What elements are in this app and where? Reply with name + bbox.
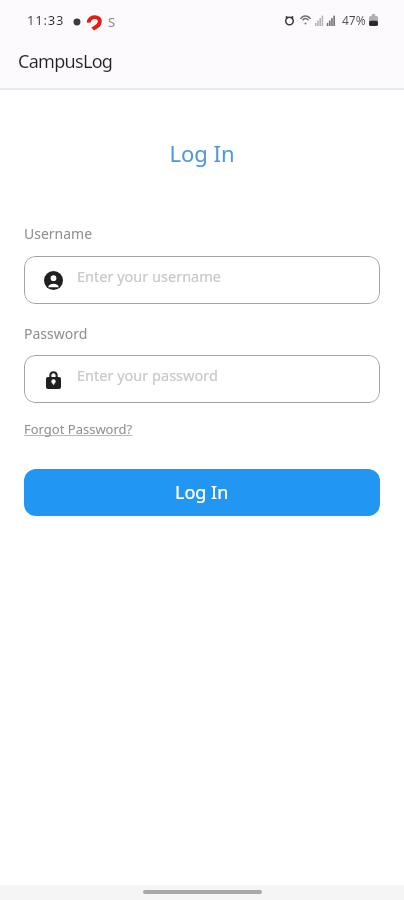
staticText: Enter your password: [77, 365, 218, 385]
staticText: Enter your username: [77, 266, 221, 286]
other: Username: [44, 271, 63, 290]
button[interactable]: Enter your username: [24, 256, 380, 304]
button[interactable]: Log In: [24, 469, 380, 516]
staticText: Username: [24, 224, 93, 243]
button[interactable]: Enter your password: [24, 355, 380, 403]
staticText: Forgot Password?: [24, 420, 133, 438]
staticText: Log In: [0, 138, 404, 168]
other: Password: [44, 370, 63, 389]
staticText: Log In: [175, 480, 229, 505]
staticText: 11:33: [27, 11, 65, 29]
button[interactable]: Forgot Password?: [24, 420, 133, 438]
staticText: Password: [24, 324, 88, 343]
staticText: S: [108, 13, 116, 31]
staticText: CampusLog: [18, 49, 113, 74]
staticText: 47%: [342, 12, 366, 28]
